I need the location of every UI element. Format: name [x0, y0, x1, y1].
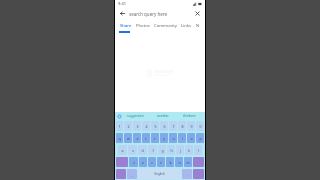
staticText: k [188, 148, 190, 153]
staticText: l [198, 148, 199, 153]
button[interactable]: Links [179, 20, 194, 31]
staticText: Links [181, 23, 192, 29]
staticText: 8 [181, 124, 184, 129]
button[interactable]: k [185, 145, 193, 155]
button[interactable]: 4 [142, 121, 150, 131]
staticText: c [151, 160, 153, 165]
button[interactable]: y [160, 133, 168, 143]
button[interactable]: a [118, 145, 127, 155]
staticText: q [118, 136, 121, 141]
button[interactable]: q [116, 133, 123, 143]
staticText: 0 [199, 124, 202, 129]
staticText: w [127, 136, 130, 141]
staticText: i [182, 136, 183, 141]
button[interactable]: Back [118, 9, 127, 18]
staticText: z [133, 160, 135, 165]
button[interactable]: d [138, 145, 147, 155]
button[interactable]: 3 [133, 121, 141, 131]
button[interactable]: 6 [160, 121, 168, 131]
staticText: 6 [163, 124, 166, 129]
staticText: N [196, 23, 200, 29]
staticText: g [161, 148, 164, 153]
button[interactable]: z [129, 157, 138, 167]
button[interactable]: r [142, 133, 150, 143]
staticText: , [132, 172, 133, 177]
button[interactable]: Shift [116, 157, 128, 167]
staticText: x [142, 160, 144, 165]
button[interactable]: 5 [151, 121, 159, 131]
button[interactable]: 7 [169, 121, 177, 131]
staticText: h [170, 148, 173, 153]
staticText: r [145, 136, 147, 141]
button[interactable]: 1 [116, 121, 123, 131]
staticText: . [187, 172, 188, 177]
staticText: search query here [129, 11, 168, 17]
staticText: 3 [136, 124, 139, 129]
staticText: b [169, 160, 172, 165]
button[interactable]: 9 [187, 121, 195, 131]
button[interactable]: thirdone [176, 112, 203, 120]
staticText: 1 [118, 124, 121, 129]
staticText: e [136, 136, 139, 141]
button[interactable]: Google [117, 114, 121, 118]
staticText: m [186, 160, 190, 165]
staticText: y [163, 136, 165, 141]
staticText: 9:41 [118, 1, 126, 6]
staticText: Photos [136, 23, 150, 29]
staticText: English [154, 172, 165, 176]
button[interactable]: 0 [196, 121, 204, 131]
staticText: n [178, 160, 181, 165]
button[interactable]: search query here [129, 9, 193, 19]
staticText: j [180, 148, 181, 153]
staticText: t [154, 136, 156, 141]
button[interactable]: l [194, 145, 202, 155]
button[interactable]: N [194, 20, 202, 31]
button[interactable]: another [149, 112, 176, 120]
button[interactable]: English [138, 169, 181, 179]
button[interactable]: v [157, 157, 165, 167]
staticText: o [190, 136, 193, 141]
button[interactable]: Symbols [116, 169, 126, 179]
button[interactable]: x [139, 157, 147, 167]
button[interactable]: g [158, 145, 166, 155]
button[interactable]: Community [152, 20, 179, 31]
button[interactable]: h [167, 145, 175, 155]
button[interactable]: o [187, 133, 195, 143]
button[interactable]: m [184, 157, 192, 167]
button[interactable]: Backspace [193, 157, 204, 167]
button[interactable]: n [175, 157, 183, 167]
staticText: 2 [127, 124, 130, 129]
button[interactable]: Share [118, 20, 134, 31]
button[interactable]: i [178, 133, 186, 143]
button[interactable]: Clear [193, 9, 202, 18]
staticText: Community [154, 23, 177, 29]
button[interactable]: p [196, 133, 204, 143]
staticText: Share [120, 23, 132, 29]
staticText: u [172, 136, 175, 141]
staticText: another [157, 114, 169, 118]
button[interactable]: suggestion [121, 112, 149, 120]
button[interactable]: b [166, 157, 174, 167]
button[interactable]: 2 [124, 121, 132, 131]
staticText: 5 [154, 124, 157, 129]
button[interactable]: c [148, 157, 156, 167]
button[interactable]: 8 [178, 121, 186, 131]
button[interactable]: Photos [134, 20, 152, 31]
staticText: thirdone [183, 114, 196, 118]
button[interactable]: j [176, 145, 184, 155]
button[interactable]: , [127, 169, 137, 179]
button[interactable]: t [151, 133, 159, 143]
button[interactable]: f [148, 145, 157, 155]
staticText: d [141, 148, 144, 153]
staticText: f [152, 148, 154, 153]
button[interactable]: u [169, 133, 177, 143]
button[interactable]: w [124, 133, 132, 143]
staticText: 4 [145, 124, 148, 129]
staticText: suggestion [127, 114, 144, 118]
staticText: v [160, 160, 162, 165]
button[interactable]: e [133, 133, 141, 143]
staticText: 9 [190, 124, 193, 129]
button[interactable]: Search [193, 169, 204, 179]
button[interactable]: s [128, 145, 137, 155]
